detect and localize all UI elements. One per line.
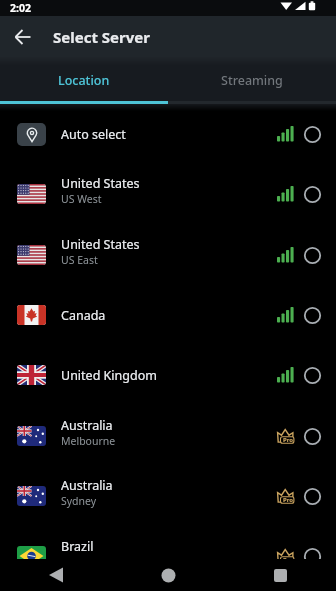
staticText: Sydney — [61, 494, 97, 508]
staticText: Select Server — [53, 27, 150, 47]
staticText: US West — [61, 192, 102, 206]
staticText: Canada — [61, 307, 106, 324]
button[interactable]: Brazil — [0, 526, 336, 559]
staticText: Pro — [283, 556, 294, 559]
button[interactable] — [224, 559, 336, 591]
staticText: Location — [58, 72, 110, 89]
button[interactable]: United States — [0, 164, 336, 224]
button[interactable]: United Kingdom — [0, 345, 336, 405]
staticText: Pro — [283, 436, 294, 444]
button[interactable]: United States — [0, 225, 336, 285]
staticText: United States — [61, 175, 140, 192]
button[interactable]: Canada — [0, 285, 336, 345]
staticText: Melbourne — [61, 434, 116, 448]
staticText: United Kingdom — [61, 367, 157, 384]
button[interactable]: Australia — [0, 406, 336, 466]
button[interactable] — [0, 559, 112, 591]
staticText: Australia — [61, 417, 113, 434]
button[interactable] — [112, 559, 224, 591]
staticText: 2:02 — [10, 1, 31, 15]
button[interactable]: Australia — [0, 466, 336, 526]
staticText: US East — [61, 253, 98, 267]
button[interactable] — [8, 22, 38, 52]
staticText: Brazil — [61, 538, 94, 555]
staticText: Auto select — [61, 126, 126, 143]
staticText: Streaming — [221, 72, 283, 89]
staticText: Pro — [283, 496, 294, 504]
button[interactable]: Streaming — [168, 57, 336, 104]
staticText: United States — [61, 236, 140, 253]
button[interactable]: Auto select — [0, 104, 336, 164]
button[interactable]: Location — [0, 57, 168, 104]
staticText: Australia — [61, 477, 113, 494]
